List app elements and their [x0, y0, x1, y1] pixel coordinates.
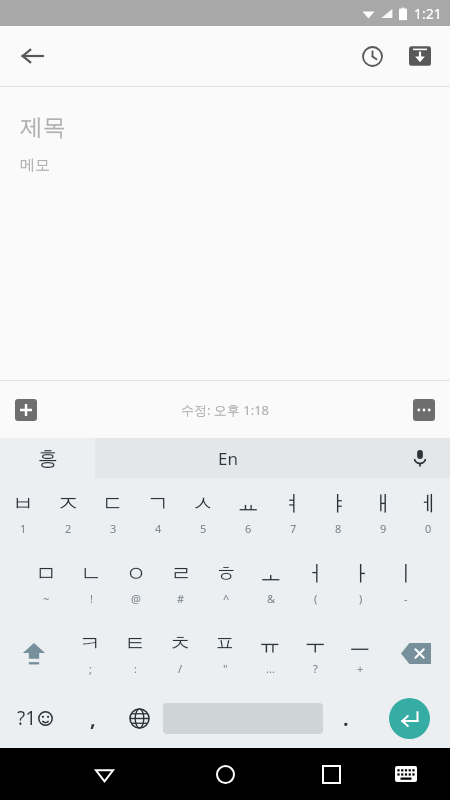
staticText: ㅛ: [237, 490, 259, 518]
staticText: ㄷ: [102, 490, 124, 518]
staticText: ...: [266, 661, 275, 676]
staticText: ㅋ: [79, 630, 101, 658]
staticText: -: [404, 591, 408, 606]
button[interactable]: Space: [163, 688, 323, 748]
button[interactable]: Add: [6, 390, 46, 430]
staticText: ㅑ: [327, 490, 349, 518]
button[interactable]: Back: [80, 750, 128, 798]
button[interactable]: Switch keyboard: [384, 752, 428, 796]
button[interactable]: ㅋ: [67, 618, 112, 688]
staticText: ㅅ: [192, 490, 214, 518]
staticText: ㅓ: [305, 560, 327, 588]
staticText: 제목: [20, 113, 66, 142]
staticText: .: [343, 705, 349, 732]
staticText: ㅏ: [350, 560, 372, 588]
button[interactable]: Shift: [0, 618, 67, 688]
staticText: 2: [65, 521, 72, 536]
staticText: ㅈ: [57, 490, 79, 518]
button[interactable]: ㄴ: [68, 548, 113, 618]
staticText: 흥: [38, 446, 58, 471]
staticText: ㅠ: [259, 630, 281, 658]
button[interactable]: Home: [201, 750, 249, 798]
button[interactable]: ㅎ: [203, 548, 248, 618]
button[interactable]: ㅈ: [45, 478, 90, 548]
button[interactable]: ㅊ: [157, 618, 202, 688]
button[interactable]: Change language: [115, 688, 163, 748]
staticText: ;: [89, 661, 92, 676]
button[interactable]: Archive: [396, 32, 444, 80]
staticText: En: [218, 447, 238, 470]
button[interactable]: ㅅ: [180, 478, 225, 548]
staticText: ^: [223, 591, 230, 606]
staticText: 0: [425, 521, 432, 536]
staticText: ㅗ: [260, 560, 282, 588]
staticText: #: [177, 591, 185, 606]
button[interactable]: ㅇ: [113, 548, 158, 618]
staticText: 3: [110, 521, 117, 536]
button[interactable]: Backspace: [382, 618, 450, 688]
staticText: ㅐ: [372, 490, 394, 518]
staticText: !: [90, 591, 93, 606]
button[interactable]: ㅐ: [360, 478, 405, 548]
button[interactable]: ㅛ: [225, 478, 270, 548]
button[interactable]: ㅕ: [270, 478, 315, 548]
staticText: ㄱ: [147, 490, 169, 518]
button[interactable]: 흥: [0, 438, 95, 478]
button[interactable]: ㅁ: [23, 548, 68, 618]
button[interactable]: Reminder: [348, 32, 396, 80]
button[interactable]: En: [95, 438, 450, 478]
button[interactable]: Back: [8, 32, 56, 80]
button[interactable]: ㅂ: [0, 478, 45, 548]
staticText: ㅕ: [282, 490, 304, 518]
staticText: ㅁ: [35, 560, 57, 588]
button[interactable]: ㅗ: [248, 548, 293, 618]
button[interactable]: ㅌ: [112, 618, 157, 688]
staticText: 수정: 오후 1:18: [181, 401, 270, 419]
staticText: ㅣ: [395, 560, 417, 588]
staticText: @: [131, 591, 141, 606]
staticText: (: [314, 591, 318, 606]
button[interactable]: ㄹ: [158, 548, 203, 618]
button[interactable]: Enter: [368, 688, 450, 748]
staticText: 8: [335, 521, 342, 536]
staticText: 6: [245, 521, 252, 536]
button[interactable]: ㅡ: [337, 618, 382, 688]
staticText: ㅜ: [304, 630, 326, 658]
staticText: ?1: [17, 705, 37, 731]
staticText: ㄴ: [80, 560, 102, 588]
staticText: &: [267, 591, 276, 606]
staticText: 4: [155, 521, 162, 536]
staticText: 1:21: [414, 4, 442, 23]
button[interactable]: ㄷ: [90, 478, 135, 548]
staticText: ㅡ: [349, 630, 371, 658]
button[interactable]: More options: [404, 390, 444, 430]
staticText: ㄹ: [170, 560, 192, 588]
button[interactable]: ㅔ: [405, 478, 450, 548]
button[interactable]: ㄱ: [135, 478, 180, 548]
staticText: ㅍ: [214, 630, 236, 658]
button[interactable]: ㅏ: [338, 548, 383, 618]
button[interactable]: Symbols and emoji: [0, 688, 70, 748]
button[interactable]: .: [323, 688, 368, 748]
button[interactable]: ㅓ: [293, 548, 338, 618]
staticText: ㅂ: [12, 490, 34, 518]
staticText: :: [134, 661, 137, 676]
button[interactable]: ㅍ: [202, 618, 247, 688]
staticText: 9: [380, 521, 387, 536]
staticText: /: [178, 661, 183, 676]
button[interactable]: ㅜ: [292, 618, 337, 688]
button[interactable]: Recent apps: [307, 750, 355, 798]
button[interactable]: Voice input: [406, 444, 434, 472]
staticText: 7: [290, 521, 297, 536]
staticText: ㅌ: [124, 630, 146, 658]
staticText: ": [223, 661, 228, 676]
staticText: ㅇ: [125, 560, 147, 588]
staticText: 5: [200, 521, 207, 536]
button[interactable]: ㅑ: [315, 478, 360, 548]
button[interactable]: ㅠ: [247, 618, 292, 688]
staticText: ㅊ: [169, 630, 191, 658]
staticText: ,: [90, 705, 96, 732]
button[interactable]: ㅣ: [383, 548, 428, 618]
staticText: 1: [20, 521, 27, 536]
button[interactable]: ,: [70, 688, 115, 748]
